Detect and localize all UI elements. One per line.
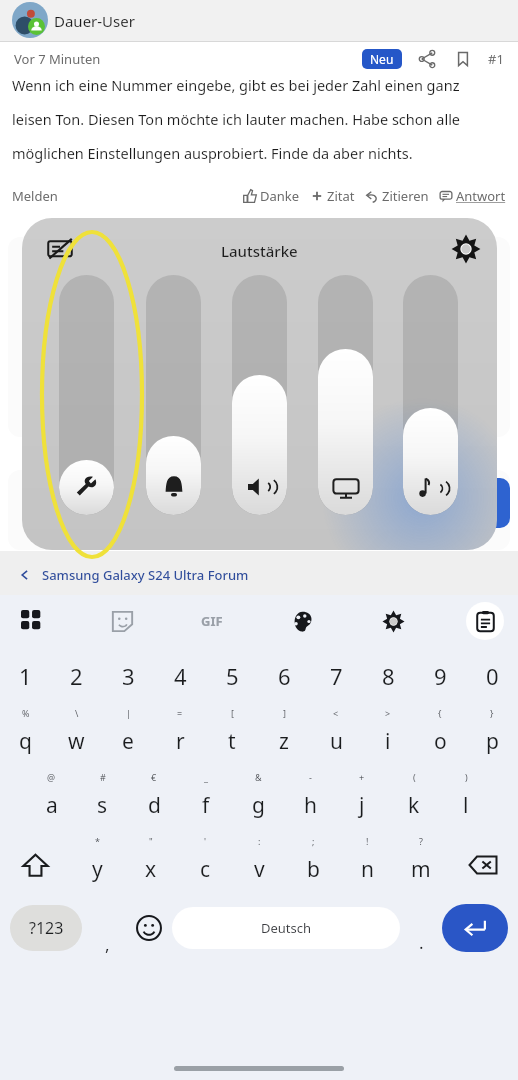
button[interactable]: Zitat — [310, 187, 355, 205]
button[interactable]: , — [82, 897, 132, 959]
button[interactable]: 7 — [310, 647, 362, 705]
button[interactable]: 6 — [258, 647, 310, 705]
button[interactable]: Tastaturmenü — [14, 603, 50, 639]
staticText: #1 — [488, 50, 504, 68]
button[interactable]: : — [232, 833, 286, 897]
button[interactable]: € — [128, 769, 180, 833]
button[interactable]: Emoji — [132, 911, 166, 945]
button[interactable]: 0 — [466, 647, 518, 705]
staticText: [ — [231, 707, 234, 719]
staticText: 6 — [278, 661, 291, 691]
staticText: w — [68, 727, 85, 756]
button[interactable]: < — [310, 705, 362, 769]
button[interactable]: ] — [258, 705, 310, 769]
button[interactable]: > — [362, 705, 414, 769]
staticText: t — [228, 727, 236, 756]
button[interactable]: % — [0, 705, 51, 769]
button[interactable]: _ — [180, 769, 232, 833]
button[interactable]: [ — [206, 705, 258, 769]
staticText: r — [176, 727, 185, 756]
button[interactable]: * — [70, 833, 124, 897]
staticText: = — [177, 707, 183, 719]
button[interactable]: " — [124, 833, 178, 897]
button[interactable]: 2 — [51, 647, 102, 705]
staticText: Lautstärke — [221, 241, 298, 261]
staticText: Neu — [370, 51, 394, 67]
button[interactable]: } — [466, 705, 518, 769]
staticText: ! — [366, 835, 369, 847]
button[interactable]: Lautstärkeregler 2 — [146, 275, 201, 515]
staticText: _ — [204, 771, 208, 783]
button[interactable]: Danke — [243, 187, 300, 205]
button[interactable]: Einstellungen — [451, 234, 481, 264]
staticText: Zitieren — [382, 187, 429, 205]
button[interactable]: - — [284, 769, 336, 833]
button[interactable]: 5 — [206, 647, 258, 705]
button[interactable]: | — [102, 705, 154, 769]
button[interactable]: + — [336, 769, 388, 833]
button[interactable]: Einstellungen — [375, 603, 411, 639]
button[interactable]: ; — [286, 833, 340, 897]
button[interactable]: Lautstärkeregler 5 — [403, 275, 458, 515]
button[interactable]: GIF — [195, 604, 229, 638]
staticText: ; — [312, 835, 315, 847]
staticText: Melden — [12, 187, 58, 205]
staticText: y — [92, 855, 103, 884]
button[interactable]: 1 — [0, 647, 51, 705]
staticText: 0 — [486, 661, 499, 691]
button[interactable]: @ — [26, 769, 77, 833]
staticText: , — [105, 933, 110, 956]
button[interactable]: Lautstärkeregler 3 — [232, 275, 287, 515]
button[interactable]: { — [414, 705, 466, 769]
button[interactable]: \ — [51, 705, 102, 769]
button[interactable]: Umschalt — [0, 833, 70, 897]
button[interactable]: Zitieren — [365, 187, 429, 205]
staticText: . — [419, 931, 424, 954]
button[interactable]: 9 — [414, 647, 466, 705]
button[interactable]: ! — [340, 833, 394, 897]
button[interactable]: . — [400, 897, 442, 959]
button[interactable]: Lautstärkeregler 1 — [59, 275, 114, 515]
button[interactable]: ' — [178, 833, 232, 897]
staticText: u — [330, 727, 343, 756]
button[interactable]: Zwischenablage — [466, 602, 504, 640]
button[interactable]: & — [232, 769, 284, 833]
button[interactable]: Untertitel aus — [46, 235, 74, 263]
staticText: z — [279, 727, 289, 756]
button[interactable]: Neu — [362, 49, 402, 69]
button[interactable]: Design — [284, 603, 320, 639]
staticText: & — [255, 771, 262, 783]
button[interactable]: = — [154, 705, 206, 769]
button[interactable]: Löschen — [448, 833, 518, 897]
button[interactable]: Lautstärkeregler 4 — [318, 275, 373, 515]
staticText: - — [309, 771, 312, 783]
staticText: | — [126, 707, 131, 719]
button[interactable]: Antwort — [439, 187, 506, 205]
staticText: 8 — [382, 661, 395, 691]
button[interactable]: 8 — [362, 647, 414, 705]
button[interactable]: 4 — [154, 647, 206, 705]
button[interactable]: # — [77, 769, 128, 833]
staticText: möglichen Einstellungen ausprobiert. Fin… — [12, 143, 413, 163]
button[interactable]: Sticker — [104, 603, 140, 639]
staticText: { — [438, 707, 442, 719]
staticText: b — [307, 855, 320, 884]
button[interactable]: ? — [394, 833, 448, 897]
button[interactable]: ?123 — [10, 905, 82, 951]
staticText: ) — [465, 771, 468, 783]
staticText: 3 — [122, 661, 135, 691]
staticText: a — [46, 791, 58, 820]
button[interactable]: Melden — [12, 187, 58, 205]
staticText: ?123 — [29, 917, 64, 939]
button[interactable]: Deutsch — [172, 907, 400, 949]
staticText: < — [333, 707, 339, 719]
button[interactable]: ( — [388, 769, 440, 833]
button[interactable]: Eingabe — [442, 904, 508, 952]
button[interactable]: Dauer-User — [0, 0, 518, 41]
button[interactable]: ) — [440, 769, 492, 833]
button[interactable]: Lesezeichen — [452, 48, 474, 70]
button[interactable]: 3 — [102, 647, 154, 705]
button[interactable]: Teilen — [416, 48, 438, 70]
staticText: h — [304, 791, 317, 820]
staticText: l — [463, 791, 469, 820]
